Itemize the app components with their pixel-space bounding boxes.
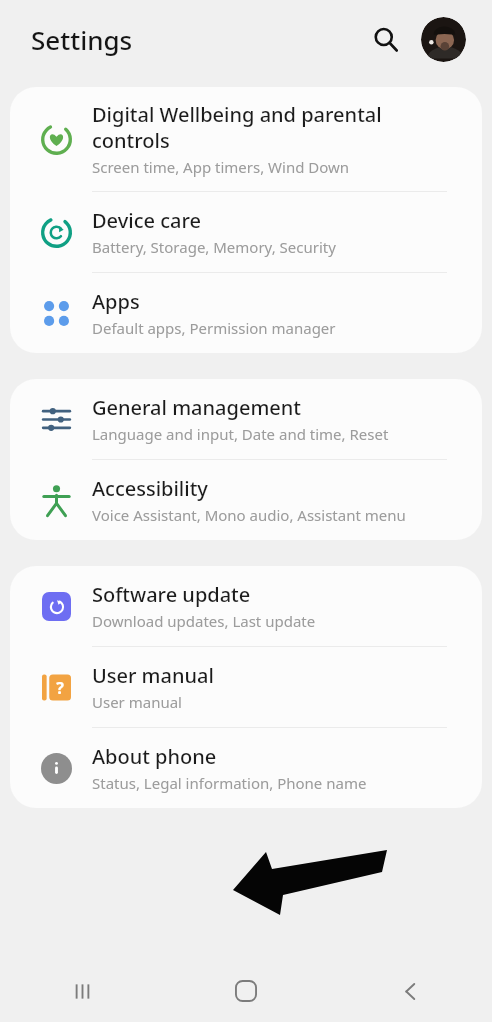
staticText: ? (56, 677, 64, 699)
button[interactable]: Account profile (421, 17, 466, 62)
button[interactable]: Back (328, 960, 492, 1022)
staticText: User manual (92, 692, 182, 712)
staticText: Language and input, Date and time, Reset (92, 424, 389, 444)
staticText: User manual (92, 662, 214, 689)
staticText: Accessibility (92, 475, 208, 502)
button[interactable]: Digital Wellbeing and parental controls (10, 87, 482, 191)
staticText: Settings (31, 22, 133, 57)
button[interactable]: Accessibility (10, 460, 482, 540)
staticText: About phone (92, 743, 217, 770)
button[interactable]: Recent apps (0, 960, 164, 1022)
button[interactable]: ? (10, 647, 482, 727)
staticText: Software update (92, 581, 251, 608)
staticText: Apps (92, 288, 140, 315)
staticText: Voice Assistant, Mono audio, Assistant m… (92, 505, 406, 525)
staticText: Battery, Storage, Memory, Security (92, 237, 336, 257)
staticText: Digital Wellbeing and parental controls (92, 101, 448, 154)
button[interactable]: Device care (10, 192, 482, 272)
button[interactable]: Software update (10, 566, 482, 646)
button[interactable]: Search (363, 17, 407, 61)
staticText: Status, Legal information, Phone name (92, 773, 367, 793)
button[interactable]: General management (10, 379, 482, 459)
button[interactable]: About phone (10, 728, 482, 808)
staticText: Download updates, Last update (92, 611, 316, 631)
staticText: Device care (92, 207, 201, 234)
staticText: General management (92, 394, 301, 421)
button[interactable]: Apps (10, 273, 482, 353)
staticText: Screen time, App timers, Wind Down (92, 157, 350, 177)
button[interactable]: Home (164, 960, 328, 1022)
staticText: Default apps, Permission manager (92, 318, 336, 338)
